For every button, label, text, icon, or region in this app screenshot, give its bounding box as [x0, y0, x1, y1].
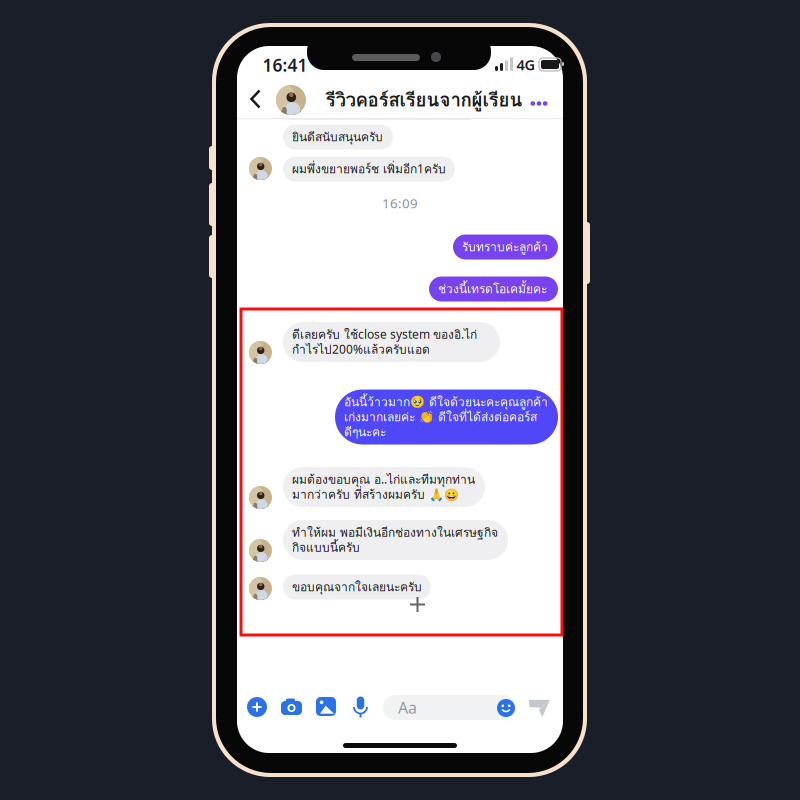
button[interactable]: Emoji — [497, 699, 515, 717]
staticText: รีวิวคอร์สเรียนจากผู้เรียน — [325, 85, 522, 114]
button[interactable]: Camera — [281, 698, 302, 715]
staticText: ขอบคุณจากใจเลยนะครับ — [292, 578, 422, 596]
staticText: ยินดีสนับสนุนครับ — [292, 128, 383, 146]
button[interactable]: Photos — [316, 697, 336, 716]
button[interactable]: Send — [528, 698, 550, 717]
staticText: กำไรไป200%แล้วครับแอด — [292, 340, 430, 359]
staticText: เก่งมากเลยค่ะ 👏 ดีใจที่ได้ส่งต่อคอร์ส — [344, 408, 537, 426]
staticText: 16:41 — [262, 53, 307, 76]
button[interactable]: Voice message — [353, 696, 368, 717]
staticText: 16:09 — [382, 194, 418, 212]
button[interactable]: รับทราบค่ะลูกค้า — [453, 234, 558, 259]
button[interactable]: ยินดีสนับสนุนครับ — [283, 124, 393, 149]
button[interactable]: Open actions — [247, 697, 267, 717]
staticText: ทำให้ผม พอมีเงินอีกช่องทางในเศรษฐกิจ — [292, 523, 498, 542]
staticText: Aa — [398, 697, 417, 718]
button[interactable]: ช่วงนี้เทรดโอเคมั้ยคะ — [429, 276, 558, 301]
button[interactable]: ผมพึ่งขยายพอร์ช เพิ่มอีก1ครับ — [283, 156, 455, 181]
staticText: ผมต้องขอบคุณ อ..ไก่และทีมทุกท่าน — [292, 470, 475, 489]
staticText: มากว่าครับ ที่สร้างผมครับ 🙏😀 — [292, 485, 459, 504]
button[interactable]: ขอบคุณจากใจเลยนะครับ — [283, 574, 431, 599]
staticText: กิจแบบนี้ครับ — [292, 538, 360, 557]
button[interactable]: ดีเลยครับ ใช้close system ของอิ.ไก่ — [283, 322, 500, 362]
staticText: ผมพึ่งขยายพอร์ช เพิ่มอีก1ครับ — [292, 160, 446, 178]
staticText: รับทราบค่ะลูกค้า — [462, 238, 548, 256]
button[interactable]: More options — [530, 99, 548, 108]
staticText: ช่วงนี้เทรดโอเคมั้ยคะ — [438, 280, 547, 298]
staticText: ดีๆนะคะ — [344, 423, 386, 441]
staticText: อันนี้ว้าวมาก🥹 ดีใจด้วยนะคะคุณลูกค้า — [344, 393, 548, 411]
button[interactable]: ผมต้องขอบคุณ อ..ไก่และทีมทุกท่าน — [283, 467, 485, 507]
staticText: 4G — [516, 55, 535, 74]
button[interactable]: Message field — [383, 695, 516, 720]
button[interactable]: อันนี้ว้าวมาก🥹 ดีใจด้วยนะคะคุณลูกค้า — [335, 389, 558, 444]
staticText: ดีเลยครับ ใช้close system ของอิ.ไก่ — [292, 325, 477, 344]
button[interactable]: Back — [243, 84, 267, 114]
button[interactable]: ทำให้ผม พอมีเงินอีกช่องทางในเศรษฐกิจ — [283, 520, 508, 560]
